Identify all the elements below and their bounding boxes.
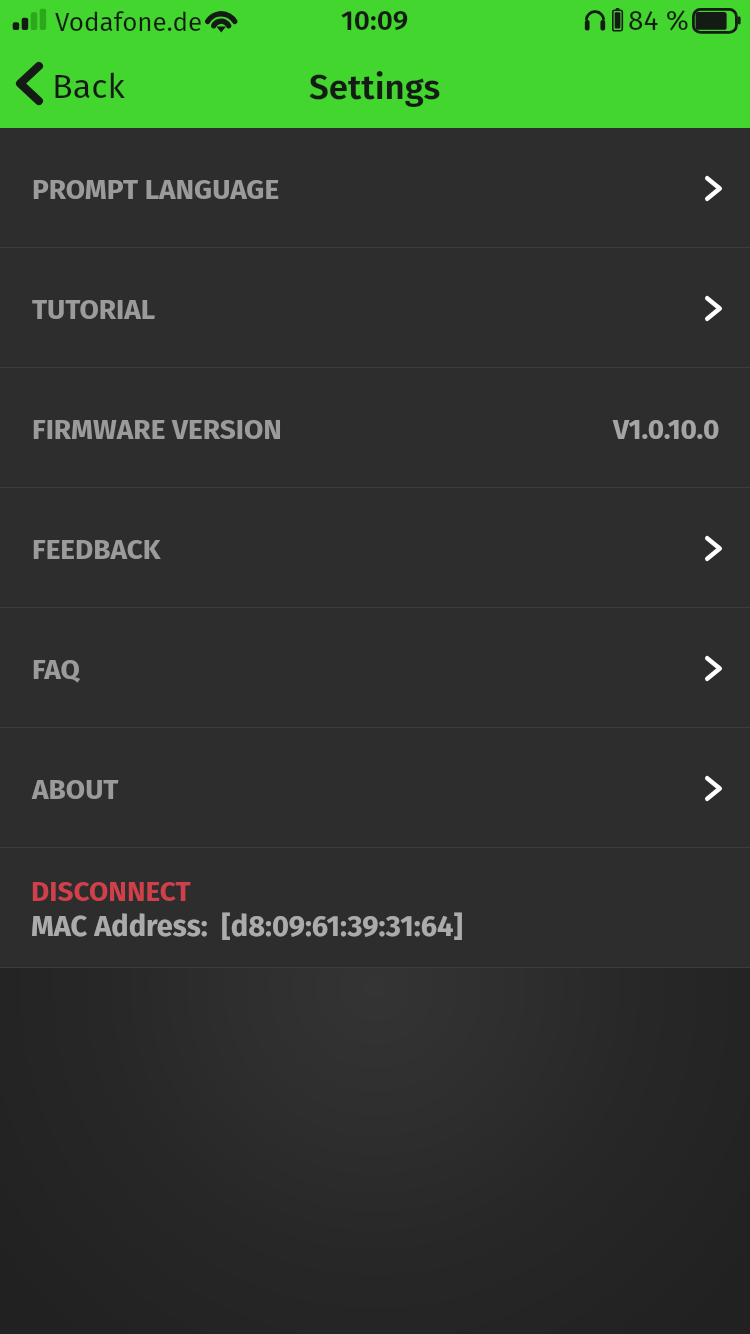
staticText: DISCONNECT bbox=[31, 875, 191, 909]
button[interactable]: DISCONNECT bbox=[0, 848, 750, 967]
staticText: Vodafone.de bbox=[55, 7, 203, 38]
staticText: TUTORIAL bbox=[32, 293, 156, 327]
button[interactable]: ABOUT bbox=[0, 728, 750, 847]
staticText: PROMPT LANGUAGE bbox=[32, 173, 280, 207]
staticText: MAC Address: [d8:09:61:39:31:64] bbox=[31, 909, 463, 944]
other: Cellular signal: 2 of 4 bars bbox=[11, 8, 51, 32]
staticText: Back bbox=[52, 66, 125, 107]
staticText: V1.0.10.0 bbox=[613, 413, 720, 447]
staticText: FEEDBACK bbox=[32, 533, 161, 567]
button[interactable]: TUTORIAL bbox=[0, 248, 750, 367]
other: Headphones connected bbox=[582, 6, 610, 34]
other: Headphone battery bbox=[608, 5, 626, 35]
staticText: FIRMWARE VERSION bbox=[32, 413, 282, 447]
button[interactable]: FIRMWARE VERSION bbox=[0, 368, 750, 487]
staticText: ABOUT bbox=[32, 773, 119, 807]
other: Wi-Fi connected bbox=[203, 2, 243, 34]
staticText: 84 % bbox=[628, 4, 689, 38]
other: Battery 84 percent bbox=[688, 5, 744, 35]
button[interactable]: FEEDBACK bbox=[0, 488, 750, 607]
staticText: 10:09 bbox=[341, 4, 409, 38]
button[interactable]: FAQ bbox=[0, 608, 750, 727]
button[interactable]: Back bbox=[8, 50, 138, 116]
staticText: FAQ bbox=[32, 653, 80, 687]
staticText: Settings bbox=[309, 66, 441, 108]
button[interactable]: PROMPT LANGUAGE bbox=[0, 128, 750, 247]
